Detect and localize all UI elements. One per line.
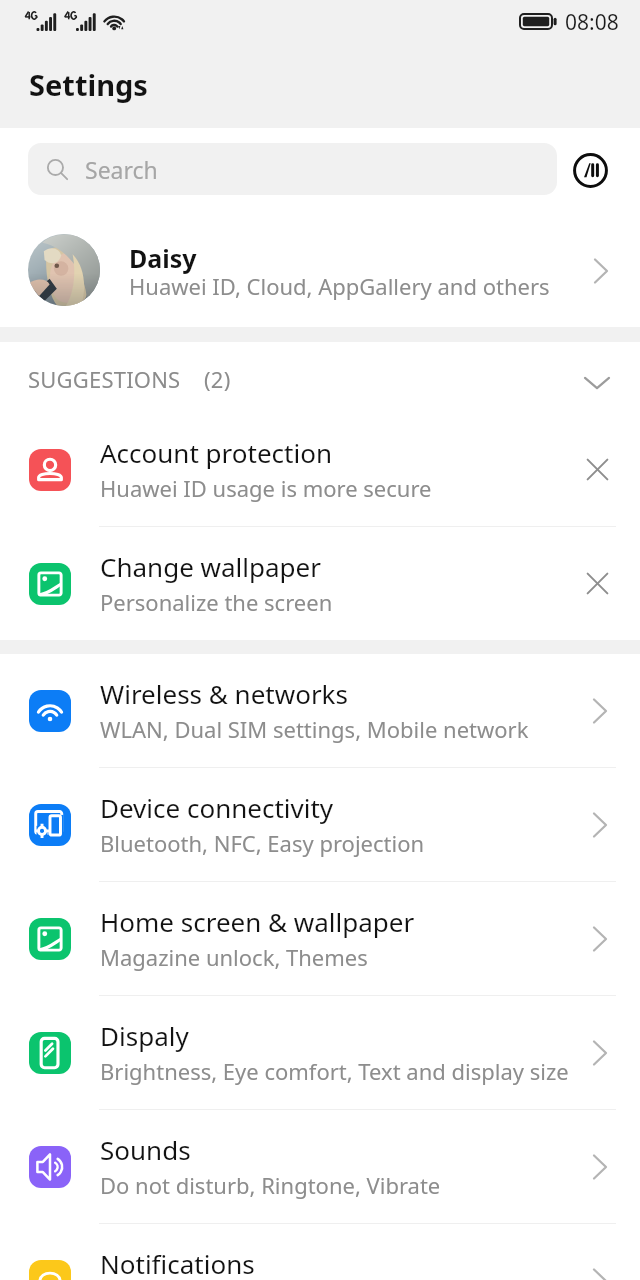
staticText: Search bbox=[85, 154, 158, 185]
staticText: Huawei ID, Cloud, AppGallery and others bbox=[129, 271, 550, 301]
button[interactable]: Search bbox=[28, 143, 557, 195]
staticText: Do not disturb, Ringtone, Vibrate bbox=[100, 1170, 441, 1200]
button[interactable]: Home screen & wallpaper bbox=[0, 882, 640, 995]
staticText: Dispaly bbox=[100, 1018, 189, 1053]
staticText: Daisy bbox=[129, 241, 197, 275]
button[interactable]: Dismiss suggestion bbox=[573, 559, 621, 607]
button[interactable]: Voice search bbox=[570, 150, 611, 191]
staticText: Personalize the screen bbox=[100, 587, 333, 617]
staticText: Change wallpaper bbox=[100, 549, 321, 584]
staticText: Bluetooth, NFC, Easy projection bbox=[100, 828, 425, 858]
button[interactable]: SUGGESTIONS (2) bbox=[0, 342, 640, 413]
staticText: 08:08 bbox=[565, 8, 619, 37]
staticText: WLAN, Dual SIM settings, Mobile network bbox=[100, 714, 529, 744]
button[interactable]: Daisy bbox=[0, 215, 640, 327]
staticText: Wireless & networks bbox=[100, 676, 348, 711]
staticText: Notifications bbox=[100, 1246, 255, 1280]
button[interactable]: Notifications bbox=[0, 1224, 640, 1280]
staticText: Settings bbox=[29, 65, 148, 104]
button[interactable]: Account protection bbox=[0, 413, 640, 526]
button[interactable]: Sounds bbox=[0, 1110, 640, 1223]
button[interactable]: Device connectivity bbox=[0, 768, 640, 881]
staticText: Account protection bbox=[100, 435, 332, 470]
staticText: SUGGESTIONS (2) bbox=[28, 364, 231, 394]
staticText: Brightness, Eye comfort, Text and displa… bbox=[100, 1056, 569, 1086]
staticText: Home screen & wallpaper bbox=[100, 904, 415, 939]
staticText: Magazine unlock, Themes bbox=[100, 942, 368, 972]
button[interactable]: Wireless & networks bbox=[0, 654, 640, 767]
button[interactable]: Dispaly bbox=[0, 996, 640, 1109]
button[interactable]: Dismiss suggestion bbox=[573, 445, 621, 493]
staticText: Device connectivity bbox=[100, 790, 334, 825]
button[interactable]: Change wallpaper bbox=[0, 527, 640, 640]
staticText: Huawei ID usage is more secure bbox=[100, 473, 432, 503]
staticText: Sounds bbox=[100, 1132, 191, 1167]
